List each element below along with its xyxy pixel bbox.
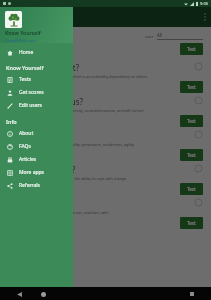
staticText: FAQs — [19, 143, 31, 150]
staticText: 9:06 — [200, 1, 208, 6]
button[interactable]: Ready to Change? — [0, 161, 211, 195]
button[interactable]: How Flexible? — [0, 127, 211, 161]
staticText: Know Yourself — [5, 30, 41, 37]
staticText: Test — [187, 152, 196, 158]
button[interactable]: Test — [180, 43, 203, 55]
staticText: Test — [187, 84, 196, 90]
button[interactable]: Test — [180, 217, 203, 229]
button[interactable]: More apps — [0, 166, 73, 179]
button[interactable]: Home — [0, 46, 73, 59]
button[interactable]: Info — [194, 96, 203, 105]
button[interactable]: Referrals — [0, 179, 73, 192]
button[interactable]: Test — [180, 115, 203, 127]
staticText: Measures three fundamental traits: diver… — [8, 108, 144, 113]
staticText: Ready to Change? — [8, 164, 194, 175]
staticText: Measures areas of social skill: social, … — [8, 210, 109, 215]
button[interactable]: All — [157, 32, 203, 40]
staticText: Get scores — [19, 89, 44, 96]
button[interactable]: Info — [194, 164, 203, 173]
button[interactable]: Test — [180, 149, 203, 161]
staticText: DeepNGlib.com — [5, 38, 36, 43]
staticText: Info — [6, 118, 17, 125]
button[interactable]: Get scores — [0, 86, 73, 99]
staticText: Articles — [19, 156, 37, 163]
staticText: Test — [187, 46, 196, 52]
staticText: About — [19, 130, 34, 137]
staticText: Measures three characteristics of flexib… — [8, 142, 135, 147]
button[interactable]: More options — [199, 7, 211, 27]
staticText: Home — [19, 49, 34, 56]
staticText: How Independent? — [8, 62, 194, 73]
staticText: Socially Skilled? — [8, 198, 194, 209]
button[interactable]: How Conscientious? — [0, 93, 211, 127]
staticText: Edit users — [19, 102, 43, 109]
button[interactable]: Info — [194, 62, 203, 71]
staticText: Test — [187, 220, 196, 226]
button[interactable]: Recent apps — [187, 289, 197, 299]
button[interactable]: Info — [194, 130, 203, 139]
staticText: user — [145, 34, 154, 39]
button[interactable]: How Independent? — [0, 59, 211, 93]
button[interactable]: Know Yourself — [0, 7, 73, 43]
button[interactable]: Test — [180, 81, 203, 93]
button[interactable]: Info — [194, 198, 203, 207]
staticText: How Flexible? — [8, 130, 194, 141]
button[interactable]: Back — [14, 289, 24, 299]
staticText: Referrals — [19, 182, 40, 189]
button[interactable]: FAQs — [0, 140, 73, 153]
staticText: More apps — [19, 169, 44, 176]
staticText: Tests — [19, 76, 31, 83]
button[interactable]: Edit users — [0, 99, 73, 112]
button[interactable]: About — [0, 127, 73, 140]
staticText: All — [157, 32, 163, 38]
staticText: Know Yourself — [6, 64, 44, 71]
staticText: Measures your level of independency whic… — [8, 74, 148, 79]
staticText: How Conscientious? — [8, 96, 194, 107]
button[interactable]: Tests — [0, 73, 73, 86]
staticText: Test — [187, 186, 196, 192]
button[interactable]: Articles — [0, 153, 73, 166]
button[interactable]: Home — [38, 289, 48, 299]
staticText: Test — [187, 118, 196, 124]
button[interactable]: Socially Skilled? — [0, 195, 211, 229]
staticText: Measures your psychological flexibility,… — [8, 176, 127, 181]
button[interactable]: Test — [180, 183, 203, 195]
